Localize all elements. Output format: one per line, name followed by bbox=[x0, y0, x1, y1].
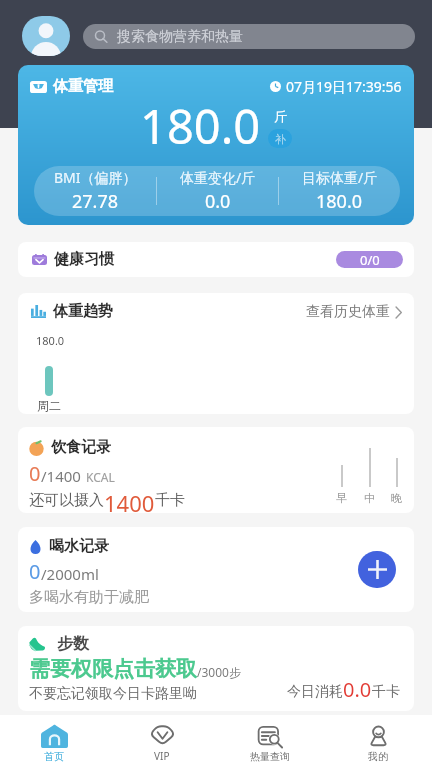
staticText: 0/0 bbox=[360, 251, 380, 268]
staticText: /1400 bbox=[41, 466, 81, 486]
staticText: 还可以摄入 bbox=[29, 491, 104, 510]
staticText: 1400 bbox=[104, 488, 155, 512]
button[interactable]: 查看历史体重 bbox=[306, 303, 402, 321]
staticText: 今日消耗 bbox=[287, 683, 343, 701]
button[interactable]: 饮食记录 bbox=[18, 427, 414, 513]
staticText: 体重变化/斤 bbox=[180, 168, 256, 187]
staticText: 多喝水有助于减肥 bbox=[29, 588, 149, 607]
staticText: 体重管理 bbox=[53, 77, 113, 96]
button[interactable]: 补 bbox=[268, 129, 292, 148]
staticText: 千卡 bbox=[372, 683, 400, 701]
button[interactable]: 搜索食物营养和热量 bbox=[83, 24, 415, 49]
staticText: 周二 bbox=[37, 398, 61, 413]
button[interactable]: 0/0 bbox=[336, 251, 403, 268]
staticText: 0 bbox=[29, 558, 41, 585]
button[interactable]: 喝水记录 bbox=[18, 527, 414, 612]
staticText: 0.0 bbox=[205, 189, 231, 214]
button[interactable]: 热量查询 bbox=[216, 719, 324, 768]
staticText: 27.78 bbox=[72, 189, 119, 214]
staticText: 查看历史体重 bbox=[306, 303, 390, 321]
button[interactable]: Add water bbox=[358, 551, 396, 588]
staticText: 饮食记录 bbox=[51, 438, 111, 457]
staticText: 斤 bbox=[274, 108, 287, 124]
button[interactable]: Profile bbox=[22, 16, 70, 56]
staticText: 健康习惯 bbox=[54, 250, 114, 269]
staticText: 07月19日17:39:56 bbox=[286, 77, 402, 96]
staticText: 首页 bbox=[44, 750, 64, 763]
staticText: 0.0 bbox=[343, 676, 372, 703]
staticText: 晚 bbox=[391, 491, 402, 505]
staticText: BMI（偏胖） bbox=[54, 168, 137, 187]
button[interactable]: 体重趋势 bbox=[18, 293, 414, 414]
staticText: 早 bbox=[336, 491, 347, 505]
staticText: 千卡 bbox=[155, 491, 185, 510]
staticText: 搜索食物营养和热量 bbox=[117, 28, 243, 46]
button[interactable]: 体重变化/斤 bbox=[157, 168, 278, 214]
staticText: 体重趋势 bbox=[53, 302, 113, 321]
button[interactable]: 步数 bbox=[18, 626, 414, 711]
staticText: 补 bbox=[275, 132, 286, 146]
button[interactable]: 体重管理 bbox=[18, 65, 414, 225]
staticText: 喝水记录 bbox=[49, 537, 109, 556]
staticText: /2000ml bbox=[41, 564, 99, 584]
staticText: 目标体重/斤 bbox=[302, 168, 378, 187]
button[interactable]: VIP bbox=[108, 719, 216, 768]
staticText: 需要权限点击获取 bbox=[29, 656, 197, 682]
staticText: 我的 bbox=[368, 750, 388, 763]
staticText: 180.0 bbox=[140, 94, 261, 158]
button[interactable]: 首页 bbox=[0, 719, 108, 768]
staticText: VIP bbox=[154, 749, 170, 763]
staticText: KCAL bbox=[86, 469, 115, 485]
button[interactable]: BMI（偏胖） bbox=[34, 168, 156, 214]
staticText: 热量查询 bbox=[250, 750, 290, 763]
staticText: 不要忘记领取今日卡路里呦 bbox=[29, 685, 197, 703]
staticText: 步数 bbox=[57, 634, 89, 654]
staticText: /3000步 bbox=[197, 664, 241, 680]
button[interactable]: 健康习惯 bbox=[18, 242, 414, 277]
staticText: 0 bbox=[29, 460, 41, 487]
staticText: 180.0 bbox=[36, 333, 65, 348]
staticText: 180.0 bbox=[316, 189, 363, 214]
button[interactable]: 目标体重/斤 bbox=[279, 168, 400, 214]
staticText: 中 bbox=[364, 491, 375, 505]
button[interactable]: 我的 bbox=[324, 719, 432, 768]
